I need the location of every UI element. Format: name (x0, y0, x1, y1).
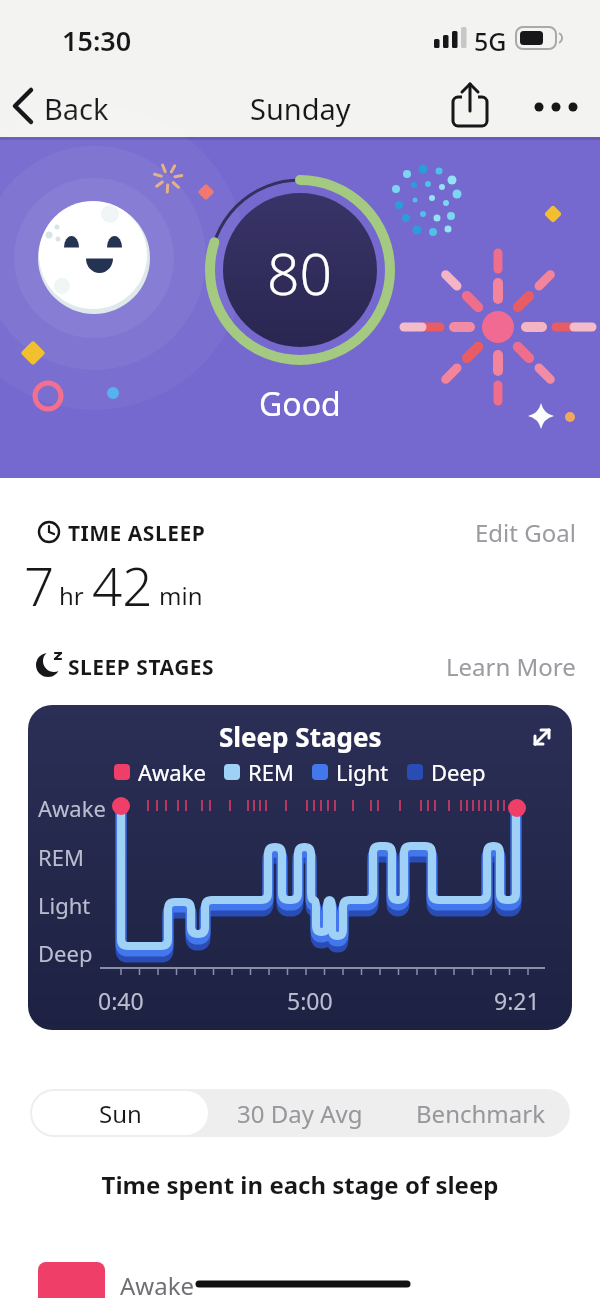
button[interactable] (448, 80, 492, 130)
staticText: 7 (24, 549, 55, 621)
button[interactable]: Edit Goal (460, 514, 580, 550)
staticText: Deep (38, 938, 93, 968)
staticText: 15:30 (62, 22, 132, 59)
staticText: Sunday (250, 89, 351, 128)
staticText: REM (248, 757, 294, 787)
staticText: Good (259, 382, 341, 426)
staticText: Awake (38, 793, 106, 823)
staticText: Awake (120, 1269, 195, 1298)
staticText: 30 Day Avg (237, 1097, 363, 1130)
staticText: Light (38, 890, 91, 920)
staticText: 5:00 (287, 985, 333, 1016)
staticText: Benchmark (416, 1097, 545, 1130)
staticText: TIME ASLEEP (68, 519, 206, 548)
button[interactable] (526, 84, 586, 130)
staticText: Deep (431, 757, 486, 787)
button[interactable] (520, 715, 564, 759)
button[interactable]: Benchmark (390, 1089, 570, 1137)
button[interactable]: Sun (32, 1091, 208, 1135)
staticText: Back (44, 89, 109, 128)
staticText: Sleep Stages (219, 719, 382, 754)
staticText: 42 (92, 549, 153, 621)
staticText: Light (336, 757, 389, 787)
button[interactable]: 30 Day Avg (210, 1089, 390, 1137)
staticText: 80 (267, 234, 333, 312)
staticText: min (159, 579, 203, 612)
staticText: SLEEP STAGES (68, 653, 215, 682)
staticText: Sun (99, 1097, 142, 1130)
button[interactable]: Learn More (440, 648, 580, 684)
staticText: Awake (138, 757, 206, 787)
staticText: 0:40 (98, 985, 144, 1016)
staticText: hr (59, 579, 84, 612)
button[interactable]: Back (6, 84, 116, 130)
staticText: Learn More (446, 650, 576, 683)
staticText: Edit Goal (475, 516, 576, 549)
staticText: Time spent in each stage of sleep (0, 1168, 600, 1201)
staticText: REM (38, 842, 84, 872)
staticText: 5G (474, 24, 507, 58)
staticText: 9:21 (494, 985, 540, 1016)
